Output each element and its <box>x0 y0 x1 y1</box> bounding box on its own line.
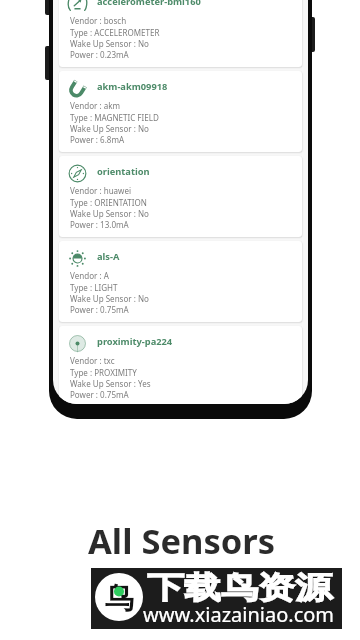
staticText: Type : MAGNETIC FIELD <box>70 112 159 123</box>
staticText: Type : LIGHT <box>70 282 118 293</box>
other: als-A sensor icon <box>68 249 87 268</box>
staticText: All Sensors <box>88 517 276 564</box>
other: akm-akm09918 sensor icon <box>68 79 87 98</box>
other: orientation sensor icon <box>68 164 87 183</box>
staticText: Power : 0.75mA <box>70 304 129 315</box>
staticText: Wake Up Sensor : No <box>70 208 149 219</box>
staticText: Wake Up Sensor : No <box>70 38 149 49</box>
staticText: Wake Up Sensor : No <box>70 293 149 304</box>
staticText: Vendor : huawei <box>70 185 132 196</box>
button[interactable]: accelerometer-bmi160 sensor icon <box>59 0 302 67</box>
staticText: accelerometer-bmi160 <box>97 0 201 8</box>
staticText: Power : 0.75mA <box>70 389 129 400</box>
staticText: Wake Up Sensor : Yes <box>70 378 151 389</box>
staticText: Vendor : txc <box>70 355 115 366</box>
staticText: proximity-pa224 <box>97 335 173 348</box>
staticText: Wake Up Sensor : No <box>70 123 149 134</box>
button[interactable]: orientation sensor icon <box>59 156 302 237</box>
staticText: Vendor : bosch <box>70 15 127 26</box>
button[interactable]: akm-akm09918 sensor icon <box>59 71 302 152</box>
staticText: akm-akm09918 <box>97 80 168 93</box>
staticText: Power : 13.0mA <box>70 219 129 230</box>
staticText: als-A <box>97 250 120 263</box>
staticText: Vendor : A <box>70 270 109 281</box>
staticText: Power : 6.8mA <box>70 134 125 145</box>
staticText: orientation <box>97 165 150 178</box>
staticText: Type : ORIENTATION <box>70 197 147 208</box>
button[interactable]: als-A sensor icon <box>59 241 302 322</box>
staticText: Type : PROXIMITY <box>70 367 137 378</box>
staticText: Type : ACCELEROMETER <box>70 27 160 38</box>
other: accelerometer-bmi160 sensor icon <box>68 0 87 13</box>
staticText: 鸟 <box>105 580 134 617</box>
staticText: Power : 0.23mA <box>70 49 129 60</box>
button[interactable]: proximity-pa224 sensor icon <box>59 326 302 404</box>
staticText: 下载鸟资源 <box>147 568 332 607</box>
staticText: Vendor : akm <box>70 100 120 111</box>
staticText: www.xiazainiao.com <box>143 601 335 628</box>
other: proximity-pa224 sensor icon <box>68 334 87 353</box>
